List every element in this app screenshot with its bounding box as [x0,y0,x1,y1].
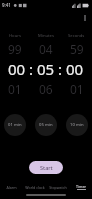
staticText: 9:41 [2,2,11,8]
staticText: Minutes [38,33,54,39]
staticText: Timer [76,184,86,189]
staticText: 01 min [8,122,22,128]
staticText: 59 [70,41,84,57]
button[interactable]: Start [29,161,63,174]
button[interactable]: 01 min [4,114,26,136]
button[interactable]: World clock [23,181,46,193]
button[interactable]: Timer [69,181,92,193]
staticText: 05 min [39,122,53,128]
staticText: 01 [70,81,84,97]
staticText: 04 [39,41,53,57]
button[interactable]: Alarm [0,181,23,193]
staticText: 99 [8,41,22,57]
staticText: Alarm [6,185,17,190]
staticText: 01 [8,81,22,97]
staticText: Seconds [68,33,85,39]
staticText: World clock [25,185,45,190]
staticText: 06 [39,81,53,97]
staticText: Start [40,164,53,171]
staticText: 10 min [70,122,84,128]
staticText: Hours [9,33,21,39]
button[interactable]: More options [79,12,91,24]
button[interactable]: 10 min [66,114,88,136]
staticText: 00 : 05 : 00 [8,59,84,79]
button[interactable]: 05 min [35,114,57,136]
button[interactable]: Stopwatch [46,181,69,193]
staticText: Stopwatch [49,185,67,190]
